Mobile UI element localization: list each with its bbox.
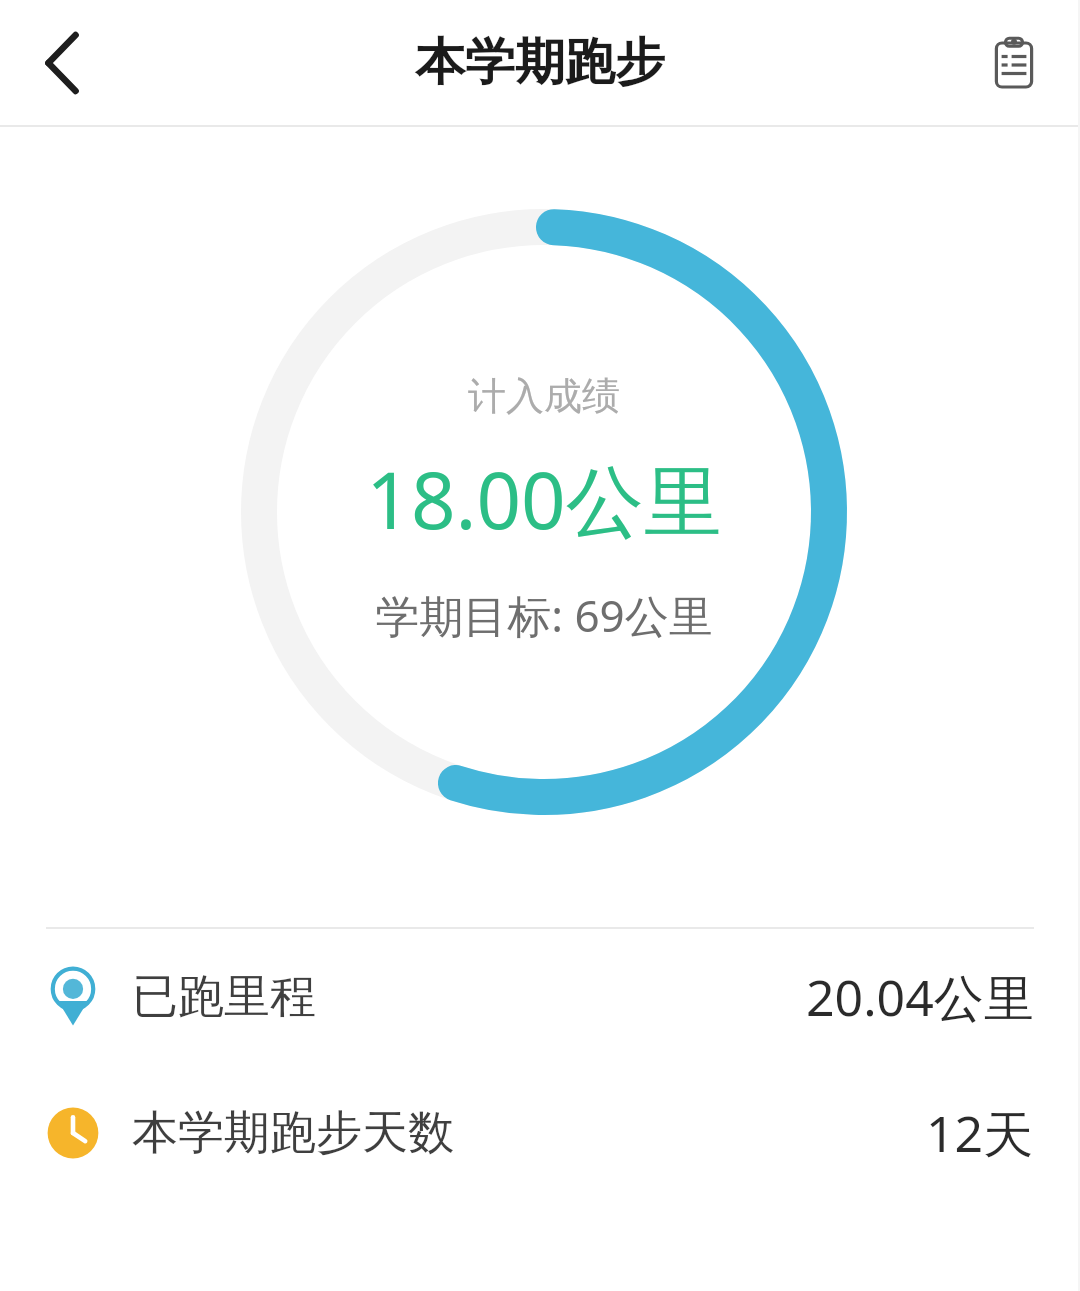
staticText: 计入成绩 [468,372,620,420]
button[interactable]: Back [12,13,112,113]
button[interactable]: Records [970,19,1058,107]
staticText: 12天 [926,1099,1034,1167]
staticText: 已跑里程 [132,968,316,1026]
staticText: 学期目标: 69公里 [375,585,713,645]
staticText: 本学期跑步 [415,31,665,94]
button[interactable]: 已跑里程 [0,929,1080,1065]
button[interactable]: 本学期跑步天数 [0,1065,1080,1201]
staticText: 20.04公里 [806,963,1034,1031]
staticText: 18.00公里 [366,446,722,553]
staticText: 本学期跑步天数 [132,1104,454,1162]
